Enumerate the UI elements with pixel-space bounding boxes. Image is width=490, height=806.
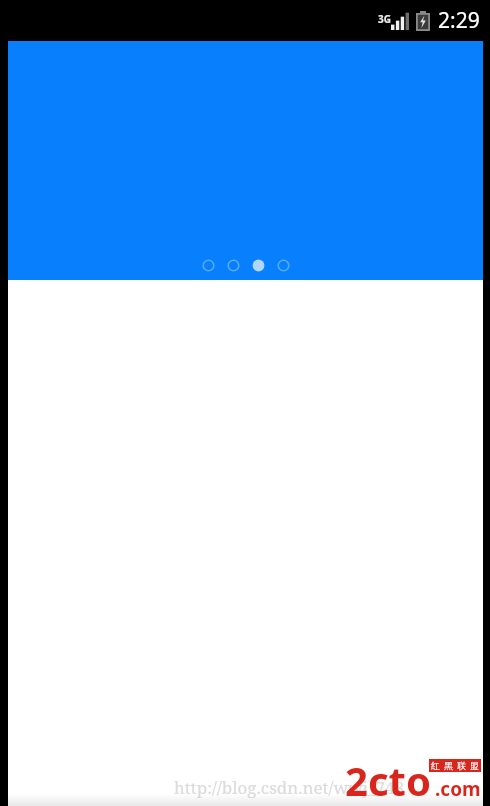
staticText: 联 <box>457 760 466 771</box>
staticText: 红 <box>431 760 440 771</box>
button[interactable] <box>8 41 483 280</box>
staticText: 2:29 <box>438 6 480 35</box>
staticText: http://blog.csdn.net/wwj_748 <box>174 776 405 799</box>
staticText: 2cto <box>345 753 431 799</box>
staticText: 盟 <box>470 760 479 771</box>
staticText: 黑 <box>444 760 453 771</box>
staticText: .com <box>435 776 481 802</box>
staticText: 3G <box>378 12 391 26</box>
